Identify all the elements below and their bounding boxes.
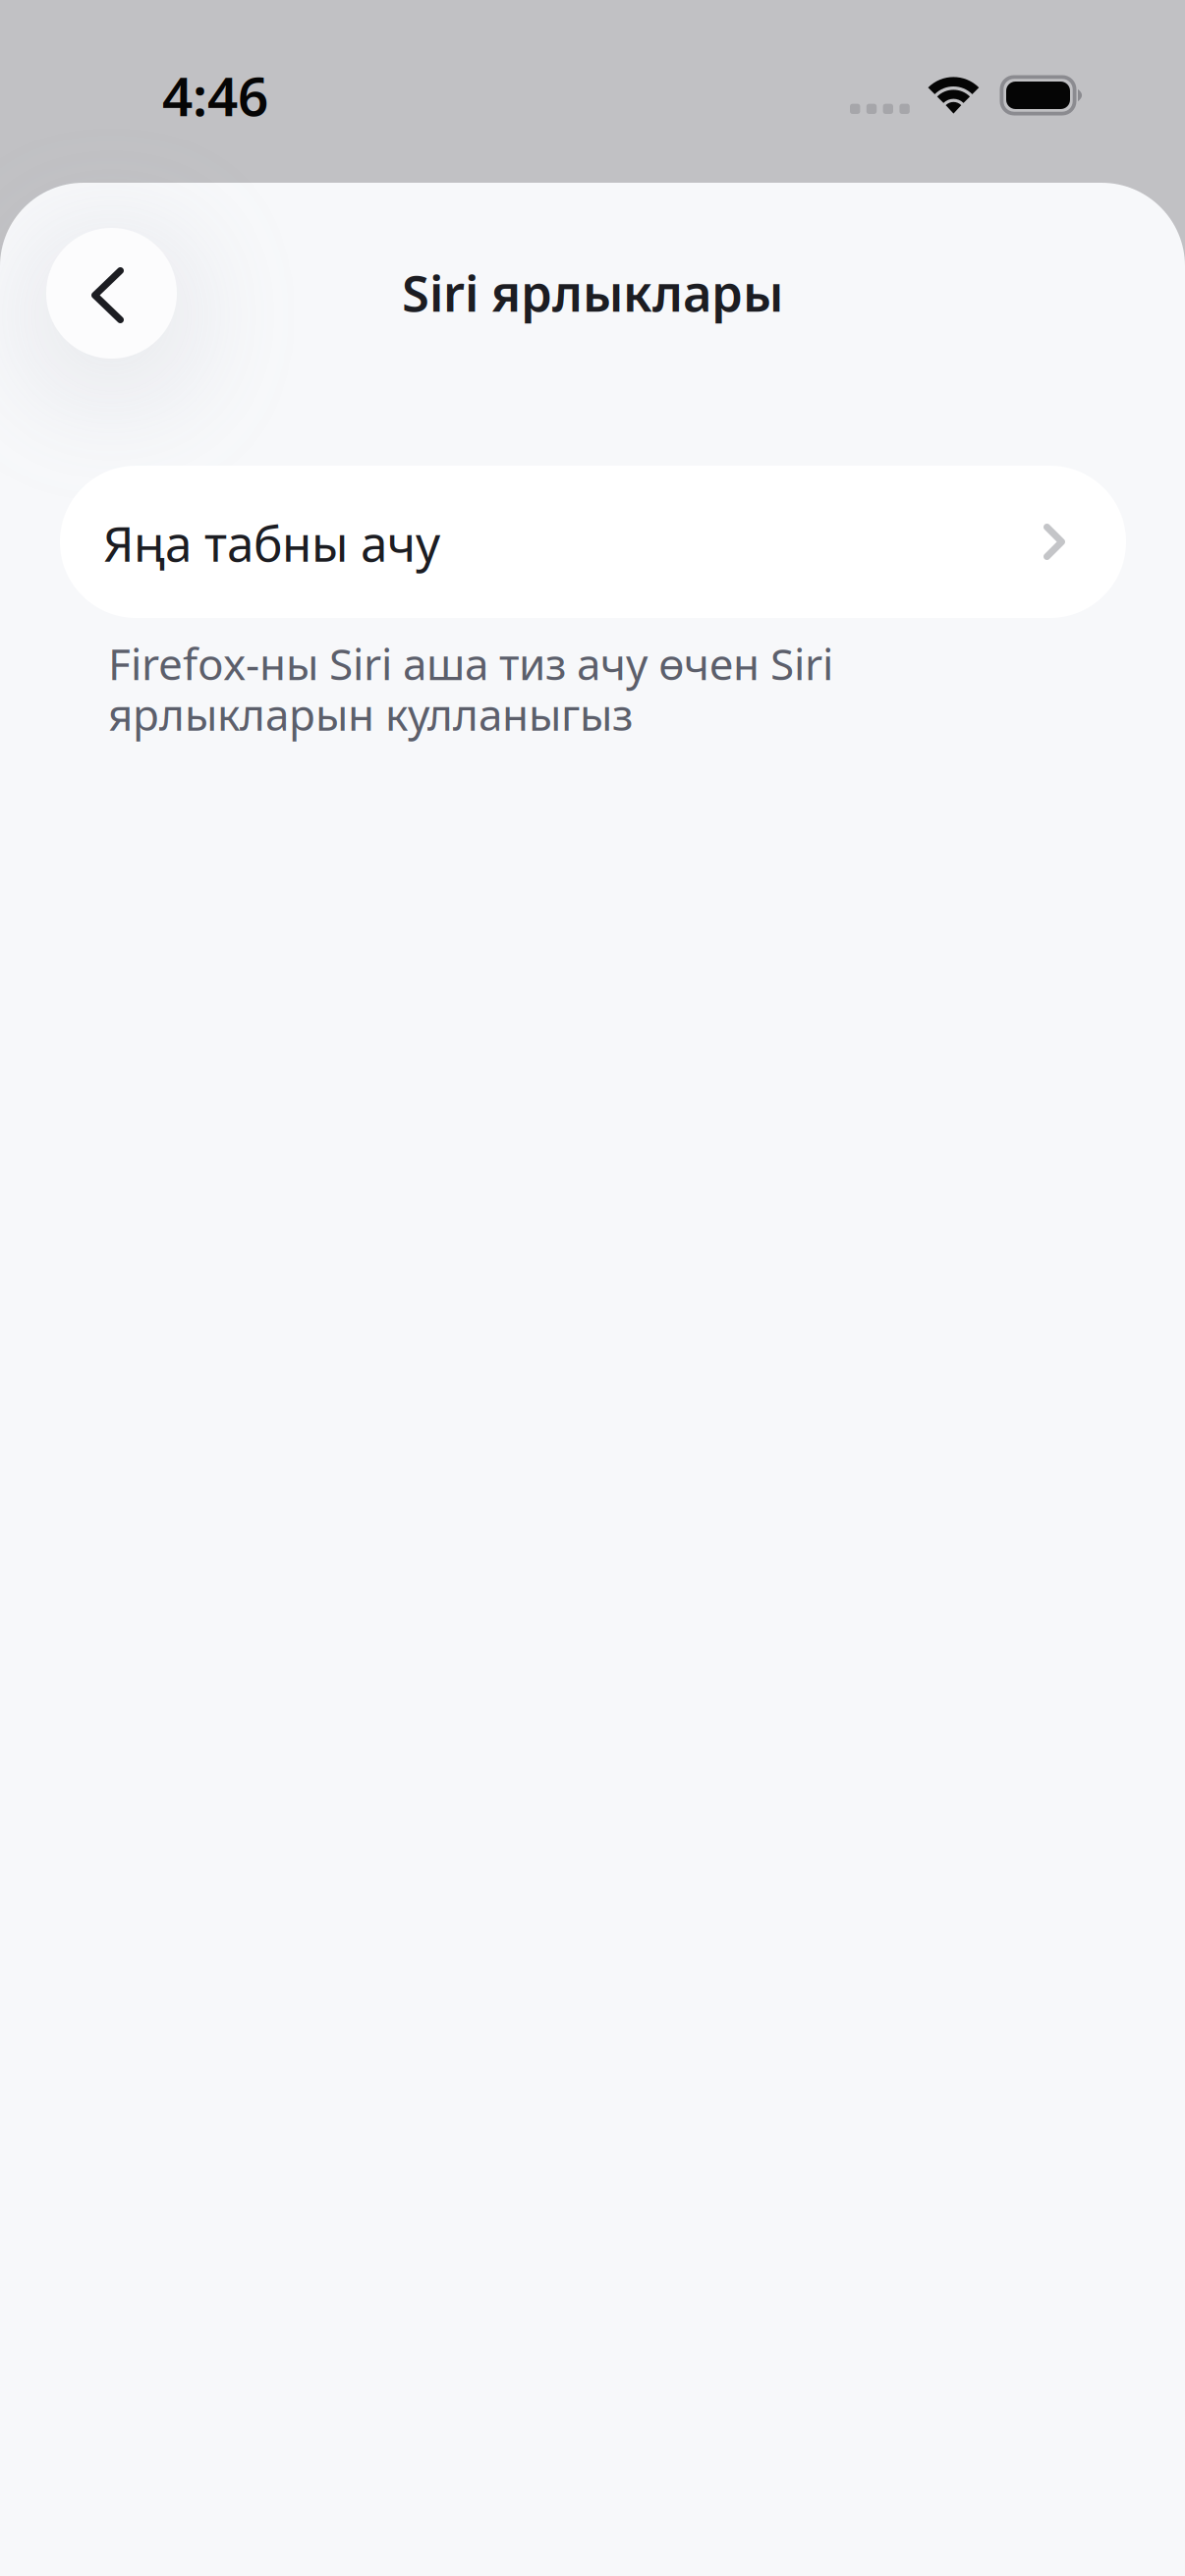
staticText: Siri ярлыклары — [402, 259, 783, 325]
button[interactable]: Back — [46, 228, 177, 359]
staticText: Яңа табны ачу — [103, 511, 440, 575]
staticText: 4:46 — [162, 60, 268, 131]
staticText: Firefox-ны Siri аша тиз ачу өчен Siri яр… — [108, 635, 833, 743]
button[interactable]: Яңа табны ачу — [60, 466, 1126, 618]
